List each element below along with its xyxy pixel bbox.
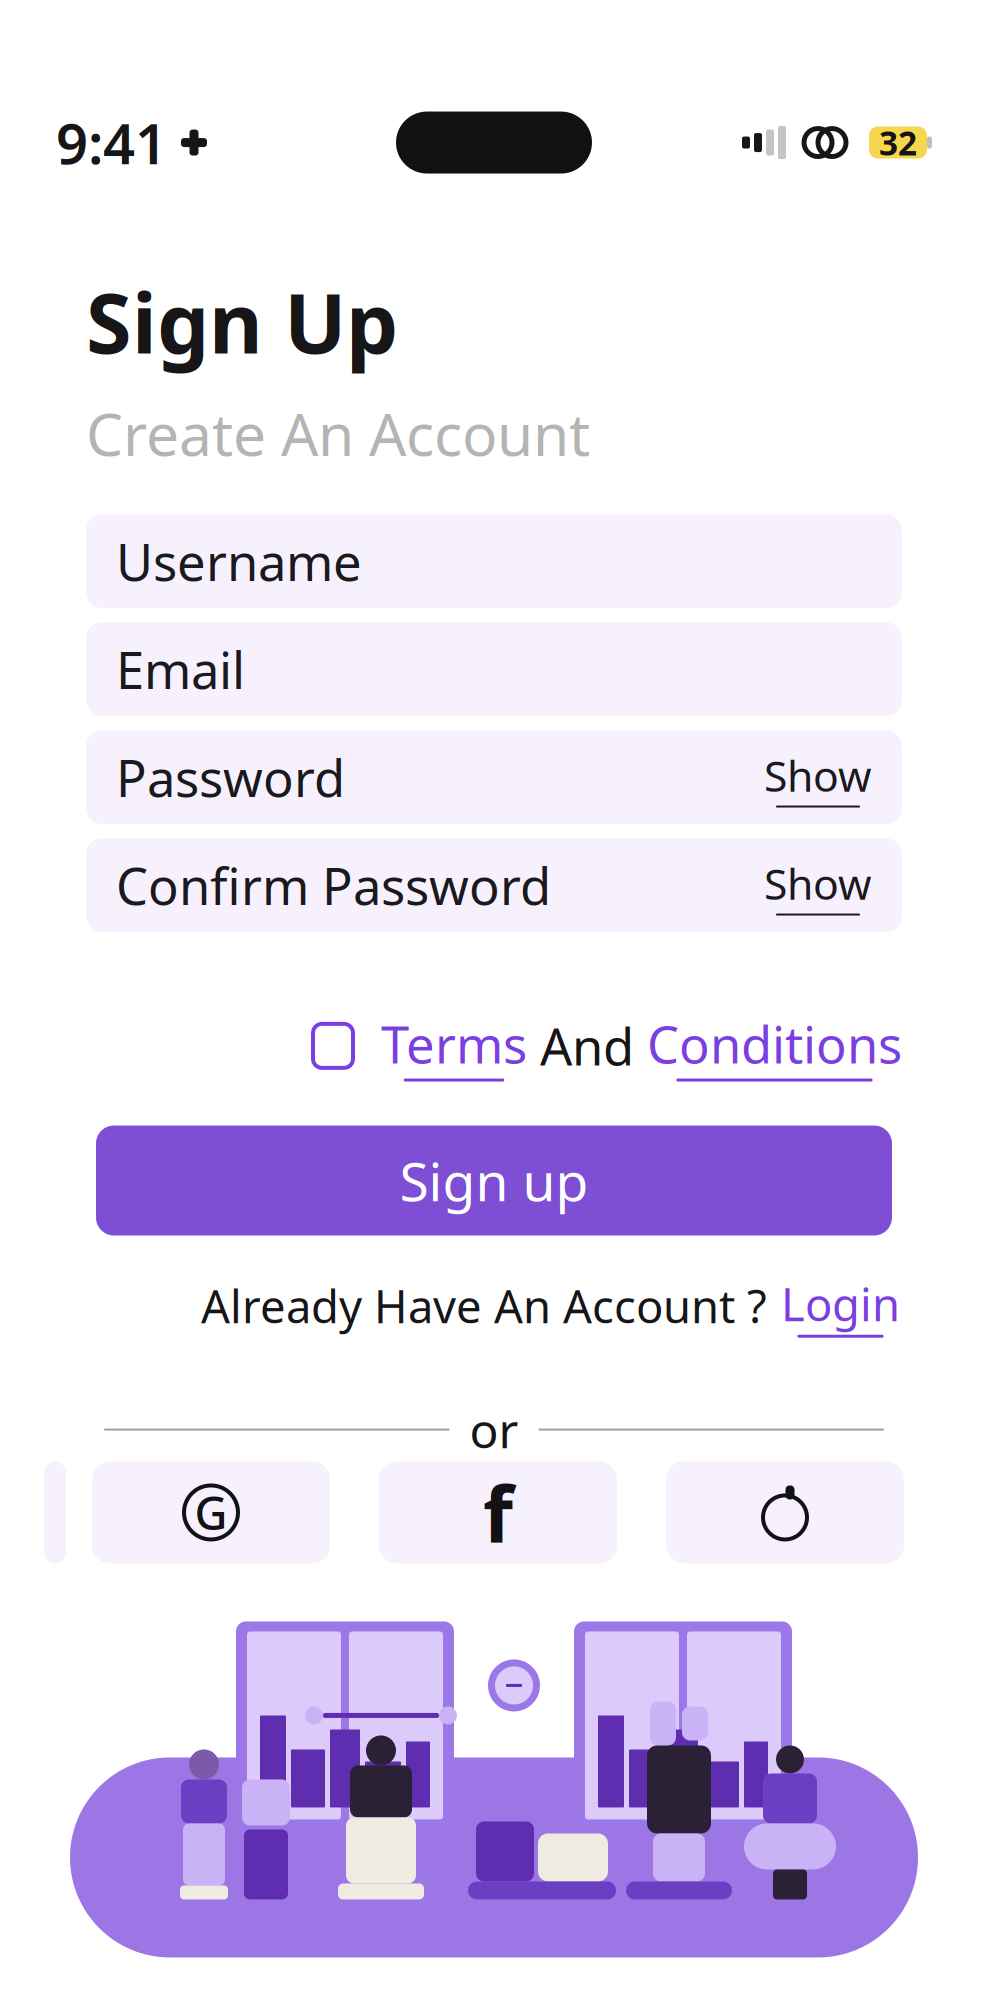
staticText: G xyxy=(194,1482,227,1543)
staticText: f xyxy=(483,1461,513,1564)
button[interactable]: Username xyxy=(86,514,902,608)
button[interactable]: Sign up xyxy=(96,1125,892,1235)
button[interactable]: Terms xyxy=(381,1010,527,1081)
staticText: Show xyxy=(764,855,872,912)
staticText: And xyxy=(527,1012,647,1079)
staticText: Conditions xyxy=(647,1010,902,1077)
button[interactable]: Accept terms and conditions xyxy=(313,1024,353,1068)
staticText: Sign up xyxy=(399,1145,588,1216)
staticText: Password xyxy=(116,744,345,811)
button[interactable]: Sign up with Facebook xyxy=(379,1461,617,1563)
button[interactable]: Login xyxy=(781,1273,900,1338)
staticText: Sign Up xyxy=(86,266,398,376)
staticText: Username xyxy=(116,528,362,595)
button[interactable]: Show xyxy=(764,747,872,808)
staticText: 32 xyxy=(879,120,917,165)
button[interactable]: Sign up with Google xyxy=(92,1461,330,1563)
button[interactable]: Sign up with Apple xyxy=(666,1461,904,1563)
staticText: or xyxy=(469,1398,518,1461)
staticText: Already Have An Account ? xyxy=(201,1275,767,1336)
staticText: Email xyxy=(116,636,245,703)
staticText: Create An Account xyxy=(86,394,590,472)
button[interactable]: Show xyxy=(764,855,872,916)
staticText: 9:41 xyxy=(56,105,167,180)
staticText: Login xyxy=(781,1273,900,1334)
button[interactable]: Email xyxy=(86,622,902,716)
staticText: Confirm Password xyxy=(116,852,551,919)
button[interactable]: Conditions xyxy=(647,1010,902,1081)
staticText: Show xyxy=(764,747,872,804)
staticText: Terms xyxy=(381,1010,527,1077)
